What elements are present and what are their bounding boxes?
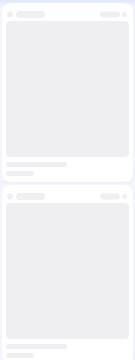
button[interactable]: Loading post	[2, 185, 133, 360]
button[interactable]: Loading post	[2, 3, 133, 182]
